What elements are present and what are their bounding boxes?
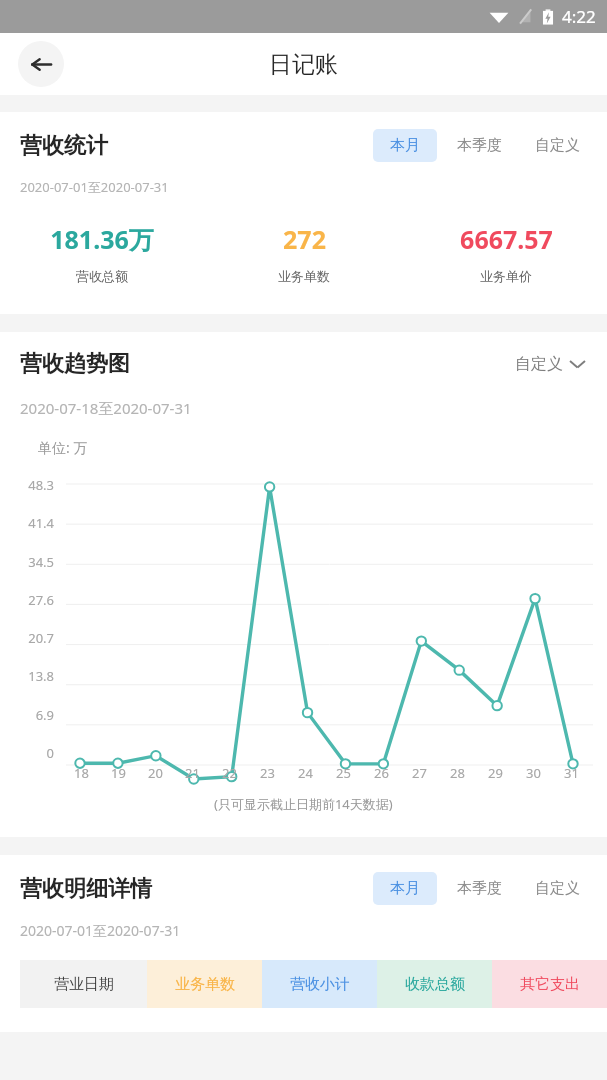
staticText: 0 [14,744,54,762]
button[interactable]: 自定义 [511,350,589,378]
staticText: 19 [111,764,126,782]
staticText: 本季度 [457,136,502,155]
staticText: 48.3 [14,476,54,494]
button[interactable]: 本月 [373,129,437,162]
staticText: 自定义 [535,879,580,898]
staticText: 收款总额 [405,975,465,994]
button[interactable]: 业务单数 [147,960,262,1008]
staticText: 其它支出 [520,975,580,994]
staticText: 23 [260,764,275,782]
staticText: 21 [185,764,200,782]
staticText: 13.8 [14,667,54,685]
staticText: 2020-07-01至2020-07-31 [20,178,169,196]
staticText: 本月 [390,879,420,898]
staticText: 4:22 [562,5,596,28]
button[interactable]: 收款总额 [377,960,492,1008]
button[interactable]: 本季度 [444,129,515,162]
staticText: 6667.57 [460,222,553,256]
staticText: 20 [148,764,163,782]
staticText: 2020-07-18至2020-07-31 [20,398,192,418]
staticText: 本季度 [457,879,502,898]
staticText: 24 [298,764,313,782]
staticText: 181.36万 [50,222,154,256]
button[interactable]: 其它支出 [492,960,607,1008]
staticText: 18 [74,764,89,782]
staticText: 25 [336,764,351,782]
staticText: 业务单数 [278,268,330,284]
staticText: 自定义 [535,136,580,155]
button[interactable]: 181.36万 [0,222,203,284]
staticText: 30 [526,764,541,782]
staticText: 本月 [390,136,420,155]
staticText: 2020-07-01至2020-07-31 [20,921,181,940]
staticText: 31 [564,764,579,782]
staticText: 41.4 [14,514,54,532]
button[interactable]: 本季度 [444,872,515,905]
staticText: 20.7 [14,629,54,647]
staticText: 272 [283,222,326,256]
staticText: 营收统计 [20,132,108,160]
staticText: 业务单价 [480,268,532,284]
staticText: 自定义 [515,354,563,374]
staticText: 营收总额 [76,268,128,284]
staticText: 营收明细详情 [20,875,152,903]
staticText: (只可显示截止日期前14天数据) [214,795,393,813]
button[interactable]: 272 [203,222,405,284]
staticText: 27 [412,764,427,782]
button[interactable]: 营收小计 [262,960,377,1008]
staticText: 营业日期 [54,975,114,994]
staticText: 27.6 [14,591,54,609]
button[interactable]: 营业日期 [20,960,147,1008]
staticText: 业务单数 [175,975,235,994]
staticText: 29 [488,764,503,782]
staticText: 34.5 [14,553,54,571]
staticText: 营收小计 [290,975,350,994]
button[interactable]: 本月 [373,872,437,905]
staticText: 营收趋势图 [20,350,130,378]
button[interactable]: 自定义 [522,129,593,162]
staticText: 26 [374,764,389,782]
staticText: 单位: 万 [38,438,88,457]
staticText: 28 [450,764,465,782]
staticText: 22 [222,764,237,782]
button[interactable]: 自定义 [522,872,593,905]
button[interactable]: Back [18,41,64,87]
button[interactable]: 6667.57 [405,222,607,284]
staticText: 6.9 [14,706,54,724]
staticText: 日记账 [269,50,338,79]
